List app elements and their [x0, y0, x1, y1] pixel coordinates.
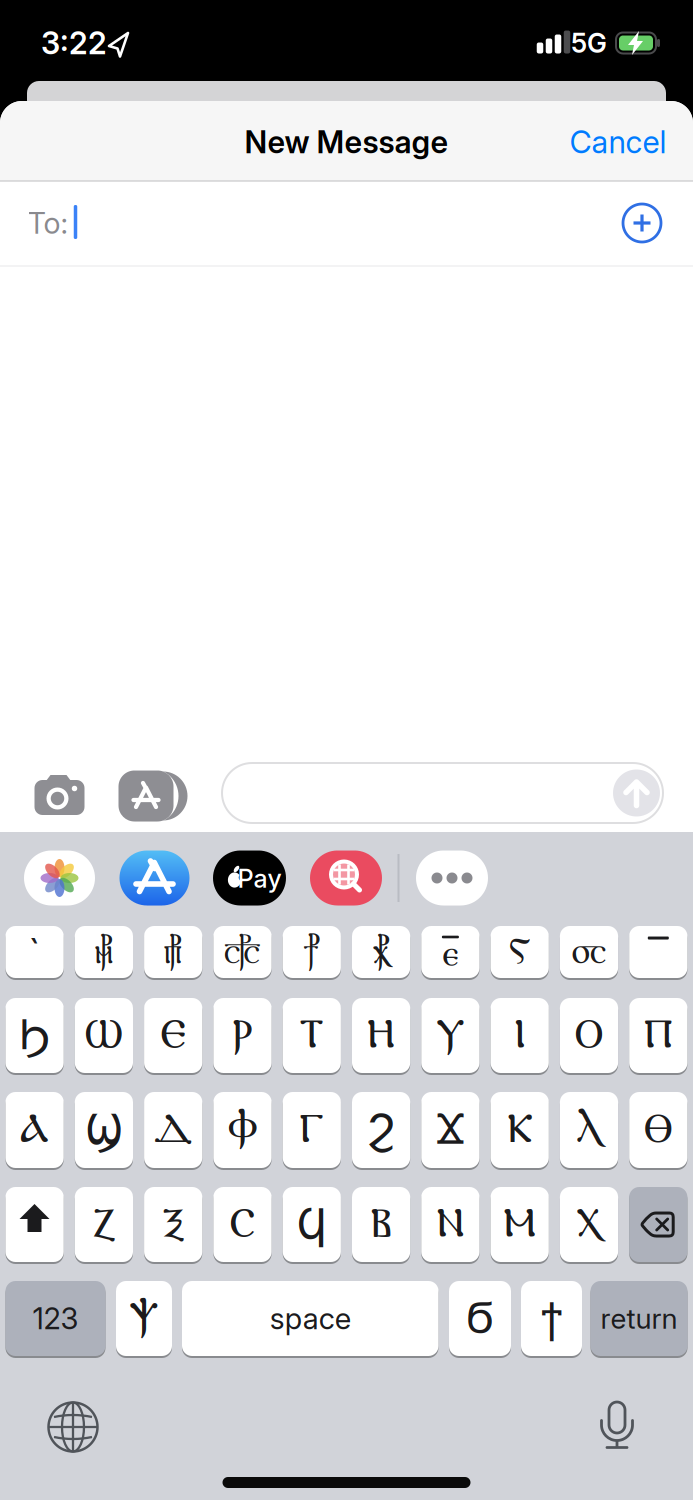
- button[interactable]: Ⲥ: [213, 1186, 272, 1263]
- staticText: ϯ: [541, 1296, 562, 1341]
- button[interactable]: Ⲉ: [144, 997, 202, 1074]
- button[interactable]: Ⲭ: [560, 1186, 618, 1263]
- button[interactable]: Delete: [629, 1186, 687, 1263]
- staticText: Ⲡ: [644, 1016, 673, 1055]
- staticText: `: [30, 930, 40, 974]
- button[interactable]: space: [182, 1280, 438, 1357]
- button[interactable]: Camera: [30, 767, 90, 827]
- staticText: Ⲭ: [576, 1205, 602, 1244]
- staticText: Ⲕ: [507, 1110, 532, 1149]
- button[interactable]: Ⲣ: [213, 997, 272, 1074]
- staticText: Ⲁ: [20, 1110, 49, 1149]
- staticText: Ⲓ: [514, 1016, 525, 1055]
- staticText: Ⲑ: [644, 1110, 673, 1149]
- button[interactable]: Apple Pay: [213, 850, 286, 906]
- button[interactable]: Ⲫ: [213, 1091, 272, 1169]
- button[interactable]: Ⲧ: [283, 997, 341, 1074]
- button[interactable]: Ⲟ: [560, 997, 618, 1074]
- button[interactable]: Ⲓ: [491, 997, 549, 1074]
- button[interactable]: Ⲗ: [560, 1091, 618, 1169]
- button[interactable]: macron: [629, 925, 687, 979]
- staticText: Ⲯ: [129, 1299, 159, 1338]
- button[interactable]: Ϫ: [421, 1091, 479, 1169]
- button[interactable]: ⲉ̄: [421, 925, 479, 979]
- staticText: Ϭ: [466, 1296, 494, 1341]
- button[interactable]: Ⲏ: [352, 997, 410, 1074]
- staticText: Ϧ: [19, 1013, 51, 1058]
- button[interactable]: 123: [5, 1280, 105, 1357]
- staticText: Ⲧ: [299, 1016, 324, 1055]
- staticText: Ⲫ: [227, 1110, 257, 1149]
- button[interactable]: Ⲩ: [421, 997, 479, 1074]
- button[interactable]: ⳦: [144, 925, 202, 979]
- button[interactable]: return: [590, 1280, 687, 1357]
- button[interactable]: Ϩ: [352, 1091, 410, 1169]
- button[interactable]: Ⲍ: [75, 1186, 133, 1263]
- staticText: Ⲍ: [92, 1205, 115, 1244]
- staticText: return: [600, 1302, 677, 1335]
- staticText: Ⲛ: [436, 1205, 464, 1244]
- staticText: ⳥: [94, 934, 113, 970]
- button[interactable]: Ⲇ: [144, 1091, 202, 1169]
- button[interactable]: Ⲝ: [144, 1186, 202, 1263]
- button[interactable]: Ⲑ: [629, 1091, 687, 1169]
- staticText: ⳦: [164, 934, 183, 970]
- staticText: ⳨: [303, 934, 320, 970]
- button[interactable]: ⳪: [560, 925, 618, 979]
- button[interactable]: Ϧ: [5, 997, 64, 1074]
- staticText: Ⲱ: [84, 1016, 123, 1055]
- button[interactable]: ⳨: [283, 925, 341, 979]
- button[interactable]: Dictation: [591, 1400, 643, 1452]
- button[interactable]: Ϥ: [283, 1186, 341, 1263]
- staticText: Ϫ: [435, 1107, 466, 1153]
- staticText: space: [270, 1301, 351, 1336]
- staticText: 123: [32, 1301, 78, 1336]
- button[interactable]: Add Contact: [618, 199, 666, 247]
- button[interactable]: Ϣ: [75, 1091, 133, 1169]
- button[interactable]: `: [5, 925, 64, 979]
- staticText: 5G: [571, 27, 607, 59]
- button[interactable]: Ⲱ: [75, 997, 133, 1074]
- button[interactable]: Send: [613, 769, 660, 816]
- button[interactable]: Shift: [5, 1186, 64, 1263]
- staticText: Ⲇ: [154, 1110, 193, 1149]
- staticText: Ⲙ: [503, 1205, 536, 1244]
- button[interactable]: Ϭ: [449, 1280, 511, 1357]
- staticText: Pay: [237, 864, 281, 893]
- button[interactable]: More: [416, 850, 488, 906]
- button[interactable]: Photos: [24, 850, 95, 905]
- staticText: ⳩: [373, 934, 390, 970]
- button[interactable]: Ⲙ: [491, 1186, 549, 1263]
- button[interactable]: ⳥: [75, 925, 133, 979]
- button[interactable]: ⳩: [352, 925, 410, 979]
- button[interactable]: Ⲅ: [283, 1091, 341, 1169]
- staticText: Ⲣ: [232, 1016, 253, 1055]
- staticText: New Message: [244, 124, 448, 160]
- staticText: 3:22: [41, 25, 107, 61]
- button[interactable]: Cancel: [569, 124, 666, 160]
- staticText: Ⲃ: [371, 1205, 392, 1244]
- staticText: ⲉ: [442, 937, 458, 972]
- staticText: Ϥ: [297, 1202, 327, 1247]
- staticText: Ⲋ: [509, 934, 531, 970]
- button[interactable]: Ⲁ: [5, 1091, 64, 1169]
- staticText: Ⲟ: [574, 1016, 603, 1055]
- button[interactable]: Next Keyboard: [45, 1399, 101, 1455]
- button[interactable]: ϯ: [521, 1280, 582, 1357]
- button[interactable]: Apps: [112, 766, 192, 826]
- staticText: Ϩ: [368, 1107, 395, 1153]
- button[interactable]: Ⲡ: [629, 997, 687, 1074]
- button[interactable]: Ⲕ: [491, 1091, 549, 1169]
- button[interactable]: Ⲋ: [491, 925, 549, 979]
- staticText: Ⲩ: [436, 1016, 465, 1055]
- staticText: Ⲉ: [160, 1016, 186, 1055]
- button[interactable]: Ⲛ: [421, 1186, 479, 1263]
- staticText: Ⲗ: [576, 1110, 602, 1149]
- button[interactable]: Ⲃ: [352, 1186, 410, 1263]
- staticText: ⳧: [224, 934, 261, 970]
- button[interactable]: App Store: [119, 850, 189, 905]
- staticText: Ϣ: [85, 1107, 122, 1153]
- button[interactable]: Images: [310, 850, 382, 906]
- button[interactable]: Ⲯ: [116, 1280, 172, 1357]
- button[interactable]: ⳧: [213, 925, 272, 979]
